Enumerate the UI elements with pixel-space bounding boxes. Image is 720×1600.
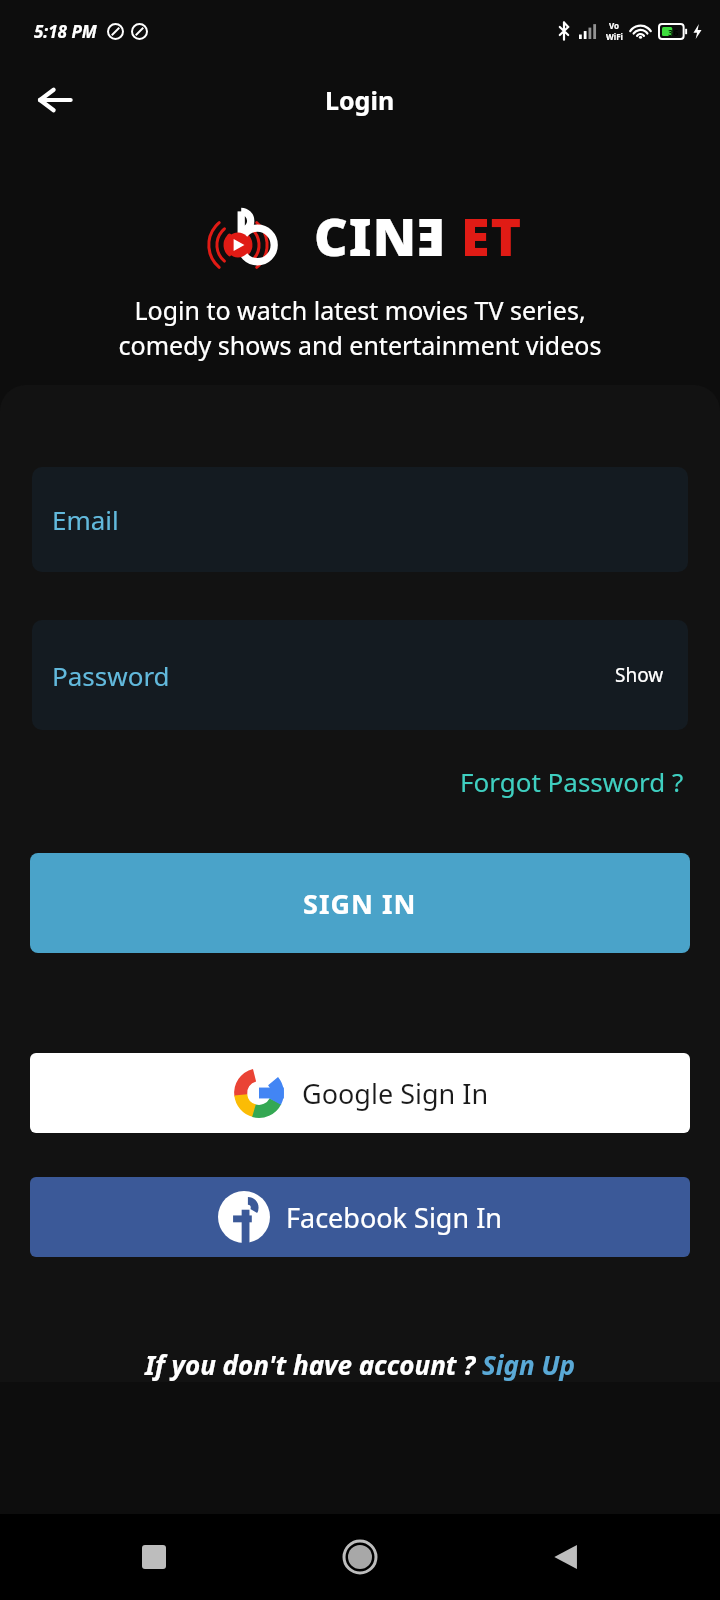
staticText: 5:18 PM	[34, 20, 97, 43]
button[interactable]: Email	[32, 467, 688, 572]
button[interactable]: Back	[18, 63, 92, 137]
staticText: ET	[461, 200, 523, 271]
staticText: Show	[615, 662, 664, 688]
button[interactable]: Recents	[130, 1533, 178, 1581]
staticText: WiFi	[606, 31, 623, 42]
staticText: If you don't have account ?	[145, 1347, 482, 1382]
button[interactable]: Back	[542, 1533, 590, 1581]
staticText: Login to watch latest movies TV series, …	[30, 293, 690, 363]
button[interactable]: Facebook Sign In	[30, 1177, 690, 1257]
staticText: SIGN IN	[303, 885, 417, 922]
staticText: Password	[52, 658, 170, 693]
staticText: Google Sign In	[302, 1075, 489, 1112]
staticText: Login	[325, 83, 395, 117]
staticText: Sign Up	[482, 1347, 575, 1382]
button[interactable]: Forgot Password ?	[454, 758, 690, 805]
button[interactable]: Home	[336, 1533, 384, 1581]
staticText: CINƎ	[314, 200, 447, 271]
button[interactable]: Show	[611, 658, 668, 692]
button[interactable]: Google Sign In	[30, 1053, 690, 1133]
staticText: Vo	[609, 20, 620, 31]
button[interactable]: Password	[32, 620, 688, 730]
button[interactable]: SIGN IN	[30, 853, 690, 953]
staticText: Facebook Sign In	[286, 1199, 502, 1236]
staticText: 36	[668, 26, 679, 38]
staticText: Forgot Password ?	[460, 764, 684, 799]
button[interactable]: Sign Up	[482, 1347, 575, 1382]
staticText: Email	[52, 502, 119, 537]
